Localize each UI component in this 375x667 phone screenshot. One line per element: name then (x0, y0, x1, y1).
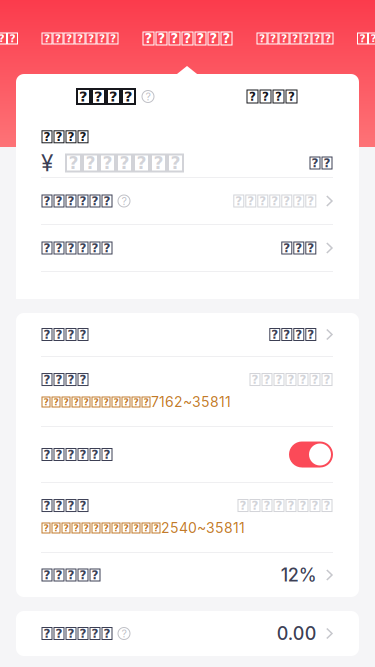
button[interactable]: ? (16, 357, 359, 426)
staticText: ? (43, 498, 50, 512)
staticText: ? (43, 447, 50, 461)
staticText: ? (113, 523, 118, 533)
staticText: ? (153, 153, 163, 173)
staticText: ? (183, 31, 191, 46)
staticText: ? (67, 241, 74, 255)
staticText: ? (123, 397, 128, 407)
staticText: ? (323, 372, 330, 386)
staticText: ? (79, 241, 86, 255)
staticText: ? (235, 194, 242, 208)
staticText: ? (43, 568, 50, 582)
staticText: ? (83, 397, 88, 407)
staticText: ? (55, 241, 62, 255)
staticText: ? (79, 194, 86, 208)
staticText: ? (283, 327, 290, 341)
staticText: ? (359, 32, 365, 45)
staticText: ? (91, 447, 98, 461)
button[interactable]: ? (0, 32, 18, 45)
staticText: ? (295, 327, 302, 341)
staticText: ? (157, 31, 165, 46)
staticText: ? (67, 194, 74, 208)
button[interactable]: ? (16, 427, 359, 482)
staticText: ? (251, 372, 258, 386)
button[interactable]: ? (16, 483, 359, 552)
staticText: ? (43, 523, 48, 533)
staticText: ? (53, 397, 58, 407)
staticText: ? (43, 372, 50, 386)
staticText: ? (91, 241, 98, 255)
staticText: ? (307, 327, 314, 341)
staticText: ? (103, 241, 110, 255)
staticText: ? (311, 372, 318, 386)
staticText: ? (88, 32, 94, 45)
staticText: ? (67, 568, 74, 582)
staticText: ? (259, 194, 266, 208)
staticText: ? (55, 327, 62, 341)
staticText: ? (275, 372, 282, 386)
staticText: ? (67, 498, 74, 512)
staticText: ? (283, 194, 290, 208)
staticText: ? (79, 130, 86, 144)
staticText: ? (303, 32, 309, 45)
staticText: ? (121, 194, 126, 207)
staticText: ? (103, 523, 108, 533)
staticText: ? (370, 32, 375, 45)
staticText: ? (67, 626, 74, 640)
staticText: ? (281, 32, 287, 45)
staticText: 7162~35811 (151, 393, 231, 410)
button[interactable]: ? (357, 32, 375, 45)
button[interactable]: ? (142, 30, 233, 46)
staticText: ? (0, 32, 4, 45)
staticText: ? (262, 89, 269, 103)
staticText: ? (325, 32, 331, 45)
staticText: ? (259, 32, 265, 45)
staticText: ? (196, 31, 204, 46)
staticText: 0.00 (277, 623, 317, 644)
staticText: ? (271, 194, 278, 208)
staticText: ? (79, 498, 86, 512)
staticText: ? (91, 626, 98, 640)
staticText: ? (43, 397, 48, 407)
staticText: ? (73, 523, 78, 533)
staticText: ? (79, 372, 86, 386)
staticText: ? (292, 32, 298, 45)
staticText: ? (55, 498, 62, 512)
staticText: ? (170, 31, 178, 46)
staticText: ? (68, 153, 78, 173)
staticText: ? (323, 156, 330, 170)
staticText: ? (43, 194, 50, 208)
staticText: ? (124, 88, 133, 105)
staticText: ? (121, 627, 126, 640)
staticText: ? (110, 32, 116, 45)
button[interactable]: ? (256, 32, 333, 45)
staticText: ? (209, 31, 217, 46)
button[interactable]: ? (16, 178, 359, 224)
staticText: ? (222, 31, 230, 46)
button[interactable]: ? (41, 32, 118, 45)
staticText: ? (94, 88, 103, 105)
staticText: ? (55, 447, 62, 461)
button[interactable]: ? (16, 611, 359, 656)
staticText: ? (109, 88, 118, 105)
staticText: ? (249, 89, 256, 103)
button[interactable]: ? (16, 553, 359, 597)
staticText: ? (91, 194, 98, 208)
staticText: ? (299, 372, 306, 386)
staticText: ? (119, 153, 129, 173)
staticText: ? (55, 568, 62, 582)
staticText: ? (66, 32, 72, 45)
staticText: ? (295, 241, 302, 255)
staticText: ? (275, 498, 282, 512)
staticText: ? (311, 156, 318, 170)
staticText: ? (307, 194, 314, 208)
button[interactable]: ? (16, 313, 359, 356)
staticText: ? (145, 90, 150, 103)
staticText: ? (123, 523, 128, 533)
staticText: ? (99, 32, 105, 45)
staticText: ? (93, 523, 98, 533)
staticText: ? (283, 241, 290, 255)
staticText: ? (77, 32, 83, 45)
staticText: ? (67, 447, 74, 461)
staticText: ? (103, 194, 110, 208)
button[interactable]: ? (16, 225, 359, 271)
